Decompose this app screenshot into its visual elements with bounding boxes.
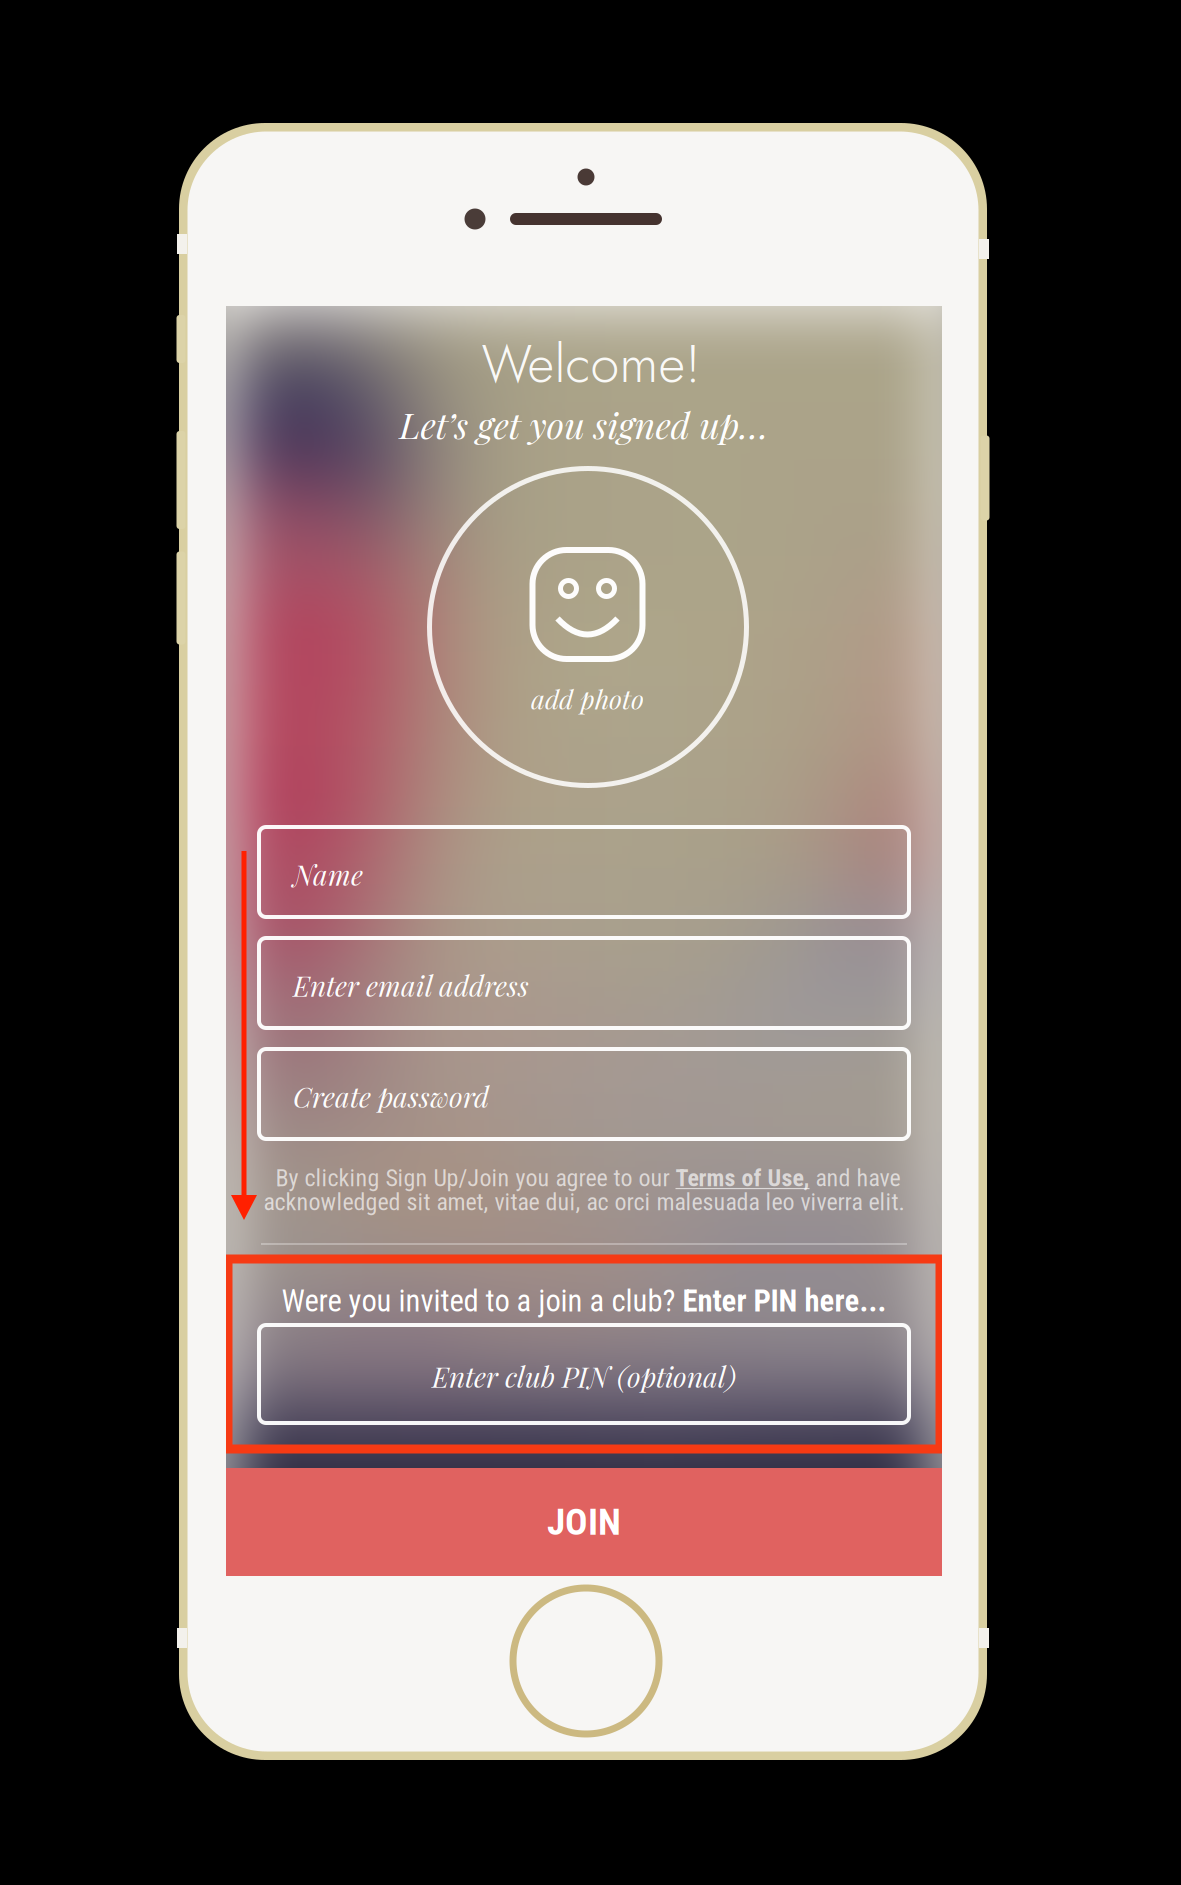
button[interactable]: Enter email address bbox=[259, 938, 909, 1028]
staticText: acknowledged sit amet, vitae dui, ac orc… bbox=[263, 1188, 904, 1216]
staticText: add photo bbox=[531, 681, 644, 716]
staticText: Create password bbox=[293, 1077, 489, 1115]
button[interactable]: Create password bbox=[259, 1049, 909, 1139]
button[interactable]: JOIN bbox=[226, 1468, 942, 1576]
button[interactable]: Enter club PIN (optional) bbox=[259, 1325, 909, 1423]
staticText: Enter club PIN (optional) bbox=[432, 1357, 736, 1395]
staticText: By clicking Sign Up/Join you agree to ou… bbox=[275, 1164, 900, 1192]
button[interactable]: By clicking Sign Up/Join you agree to ou… bbox=[275, 1164, 900, 1192]
staticText: Name bbox=[293, 855, 363, 893]
staticText: Let’s get you signed up… bbox=[399, 400, 768, 448]
staticText: JOIN bbox=[547, 1500, 621, 1544]
staticText: Enter email address bbox=[293, 966, 529, 1004]
button[interactable]: Name bbox=[259, 827, 909, 917]
staticText: Welcome! bbox=[481, 326, 700, 401]
staticText: Were you invited to a join a club? Enter… bbox=[281, 1283, 886, 1318]
